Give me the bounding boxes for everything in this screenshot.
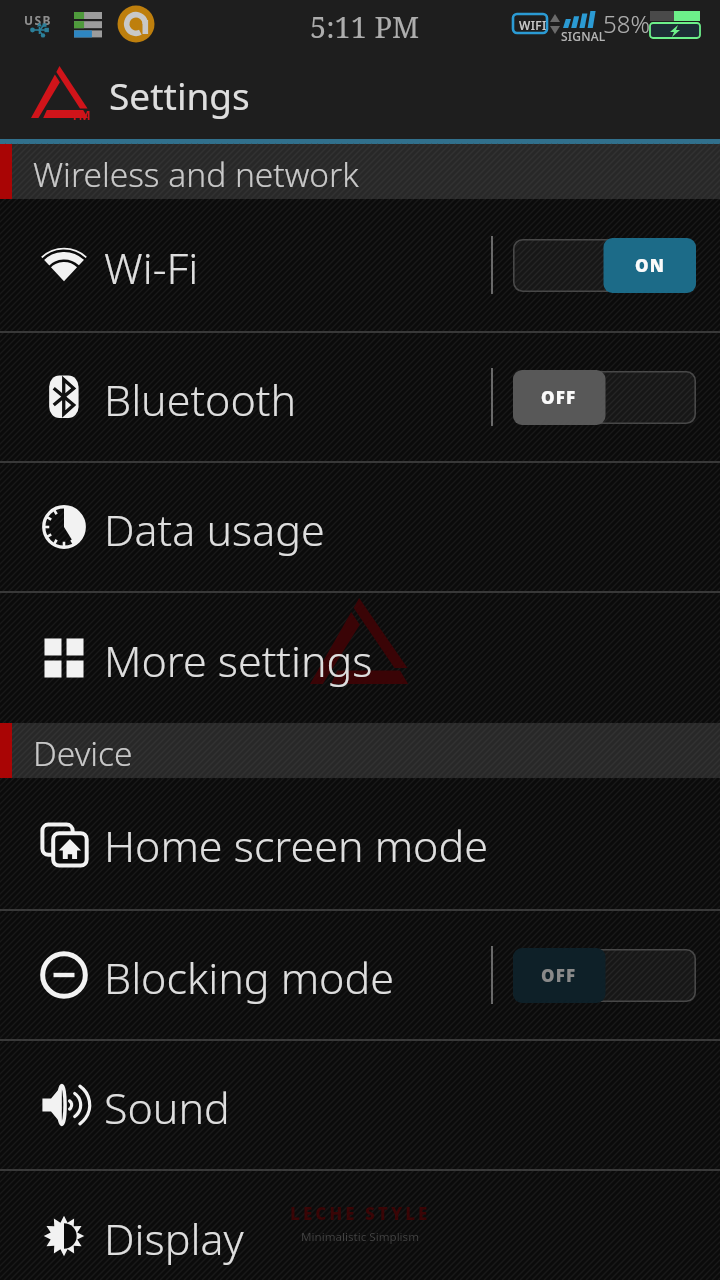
button[interactable]: OFF [490, 911, 720, 1039]
staticText: USB [24, 12, 52, 28]
button[interactable]: Data usage [0, 463, 720, 591]
staticText: Wi-Fi [104, 238, 199, 297]
other: App logo [31, 66, 89, 118]
staticText: WIFI [519, 17, 547, 33]
staticText: Display [104, 1209, 244, 1268]
button[interactable]: ON [490, 199, 720, 331]
staticText: Wireless and network [33, 151, 359, 197]
staticText: Bluetooth [104, 370, 296, 429]
staticText: OFF [541, 964, 577, 987]
button[interactable]: More settings [0, 593, 720, 723]
staticText: More settings [104, 631, 373, 690]
staticText: Sound [104, 1078, 230, 1137]
button[interactable]: Wi-Fi [0, 199, 720, 331]
staticText: 5:11 PM [310, 7, 420, 46]
button[interactable]: Blocking mode [0, 911, 720, 1039]
staticText: SIGNAL [561, 28, 606, 44]
staticText: 58% [603, 7, 650, 40]
button[interactable]: Bluetooth [0, 333, 720, 461]
staticText: OFF [541, 386, 577, 409]
staticText: Minimalistic Simplism [301, 1229, 420, 1245]
button[interactable]: LECHE STYLE [0, 1171, 720, 1280]
staticText: ON [635, 254, 666, 277]
staticText: Data usage [104, 500, 325, 559]
staticText: Home screen mode [104, 816, 488, 875]
staticText: LECHE STYLE [290, 1202, 431, 1225]
button[interactable]: OFF [490, 333, 720, 461]
button[interactable]: Sound [0, 1041, 720, 1169]
staticText: Blocking mode [104, 948, 394, 1007]
button[interactable]: Home screen mode [0, 778, 720, 909]
staticText: Settings [109, 70, 250, 120]
staticText: TM [71, 106, 91, 124]
staticText: Device [33, 730, 133, 776]
